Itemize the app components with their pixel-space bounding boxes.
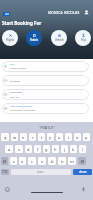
button[interactable]: "P0A1L0" — [0, 123, 93, 131]
button[interactable]: Flights — [2, 30, 18, 46]
staticText: Nov 20,2029 | Nov 25,2029 — [10, 109, 36, 112]
button[interactable]: Vehicle — [51, 30, 67, 46]
button[interactable]: k — [70, 145, 77, 153]
staticText: i — [68, 135, 70, 140]
staticText: t — [41, 135, 43, 140]
staticText: m — [70, 159, 74, 164]
button[interactable]: t — [38, 133, 45, 141]
button[interactable]: r — [29, 133, 36, 141]
staticText: MONICA NICOLAS — [48, 11, 80, 15]
button[interactable]: v — [38, 157, 46, 165]
staticText: g — [45, 147, 48, 152]
button[interactable]: space — [11, 169, 71, 175]
staticText: Vehicle — [55, 38, 64, 42]
staticText: o — [76, 135, 79, 140]
button[interactable]: z — [10, 157, 17, 165]
staticText: done — [79, 170, 87, 174]
button[interactable]: City * — [4, 61, 87, 72]
staticText: Start Booking For — [2, 20, 42, 26]
staticText: n — [61, 159, 64, 164]
staticText: v — [41, 159, 44, 164]
staticText: Trip — [81, 38, 86, 42]
staticText: u — [58, 135, 61, 140]
staticText: y — [49, 135, 52, 140]
staticText: e — [22, 135, 25, 140]
button[interactable]: d — [25, 145, 32, 153]
button[interactable]: ?123 — [1, 169, 9, 175]
staticText: k — [72, 147, 75, 152]
staticText: s — [18, 147, 20, 152]
button[interactable]: g — [43, 145, 50, 153]
button[interactable]: s — [15, 145, 23, 153]
button[interactable]: Province — [4, 75, 87, 86]
button[interactable]: f — [34, 145, 41, 153]
staticText: q — [4, 135, 7, 140]
staticText: Flights — [6, 38, 15, 42]
staticText: Hotels — [30, 38, 38, 42]
staticText: P0A1L0 — [10, 95, 19, 98]
button[interactable]: j — [61, 145, 68, 153]
staticText: w — [13, 135, 17, 140]
button[interactable]: Profile — [84, 10, 89, 15]
staticText: a — [8, 147, 11, 152]
button[interactable]: l — [79, 145, 86, 153]
staticText: j — [64, 147, 66, 152]
button[interactable]: Trip — [75, 30, 91, 46]
staticText: Province — [10, 79, 21, 82]
staticText: h — [54, 147, 57, 152]
staticText: r — [32, 135, 34, 140]
staticText: x — [21, 159, 24, 164]
staticText: City * — [10, 63, 16, 66]
staticText: z — [13, 159, 15, 164]
button[interactable]: m — [68, 157, 76, 165]
button[interactable]: o — [74, 133, 81, 141]
button[interactable]: Logo — [3, 12, 10, 16]
button[interactable]: h — [52, 145, 59, 153]
button[interactable]: p — [83, 133, 90, 141]
button[interactable]: done — [73, 169, 92, 175]
staticText: f — [37, 147, 39, 152]
button[interactable]: a — [5, 145, 13, 153]
button[interactable]: b — [48, 157, 56, 165]
staticText: "P0A1L0" — [39, 125, 55, 130]
button[interactable]: c — [28, 157, 36, 165]
button[interactable]: Voice input — [81, 187, 86, 192]
button[interactable]: q — [1, 133, 9, 141]
button[interactable]: Check in/Check Out date — [4, 103, 87, 114]
staticText: p — [85, 135, 88, 140]
button[interactable]: y — [47, 133, 54, 141]
button[interactable]: Emoji — [5, 187, 10, 192]
staticText: d — [27, 147, 30, 152]
staticText: ?123 — [2, 170, 8, 174]
button[interactable]: Shift — [1, 157, 8, 165]
button[interactable]: Postal Code * — [4, 89, 87, 100]
staticText: l — [82, 147, 84, 152]
staticText: b — [51, 159, 54, 164]
button[interactable]: Backspace — [78, 157, 86, 165]
button[interactable]: x — [19, 157, 26, 165]
staticText: space — [37, 170, 45, 174]
button[interactable]: w — [11, 133, 18, 141]
button[interactable]: u — [56, 133, 63, 141]
button[interactable]: i — [65, 133, 72, 141]
staticText: c — [31, 159, 33, 164]
staticText: Check in/Check Out date — [10, 105, 32, 108]
staticText: Winslet, PA(ECA) — [10, 67, 26, 70]
button[interactable]: e — [20, 133, 27, 141]
button[interactable]: Hotels — [26, 30, 42, 46]
button[interactable]: n — [58, 157, 66, 165]
staticText: Postal Code * — [10, 91, 23, 94]
